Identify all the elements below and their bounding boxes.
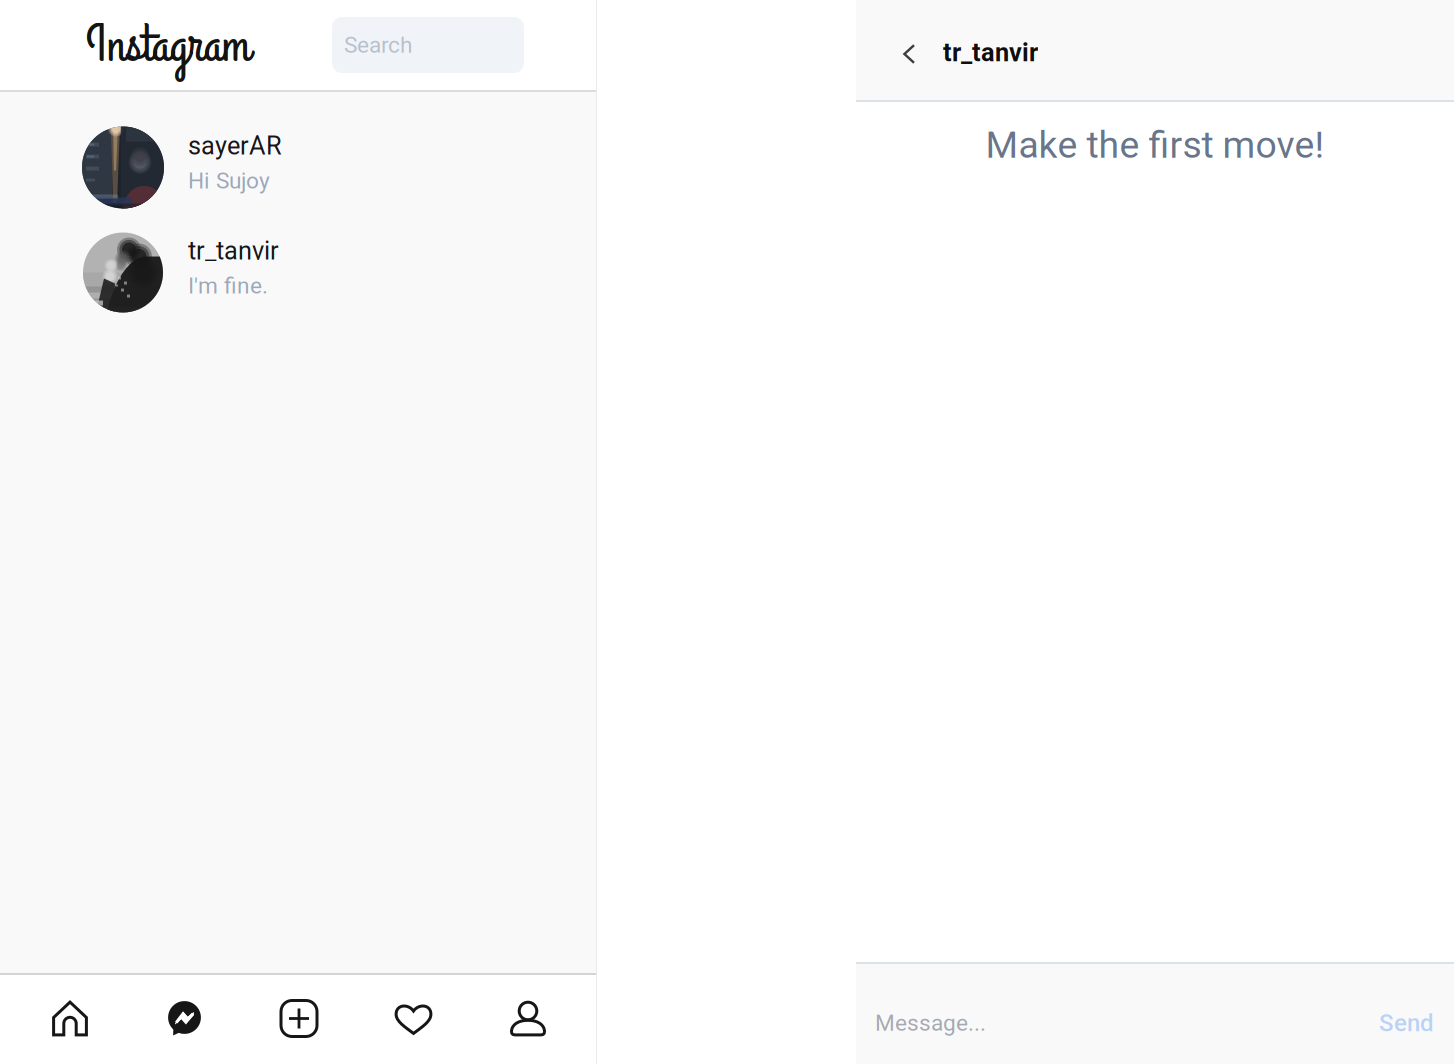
button[interactable]: Back: [856, 24, 931, 76]
button[interactable]: Home: [51, 974, 89, 1064]
button[interactable]: Create: [280, 974, 318, 1064]
button[interactable]: tr_tanvir: [0, 220, 597, 325]
staticText: sayerAR: [188, 131, 282, 161]
button[interactable]: Send: [1379, 963, 1454, 1064]
staticText: Instagram: [86, 11, 250, 81]
staticText: Make the first move!: [985, 123, 1324, 167]
button[interactable]: sayerAR: [0, 115, 597, 220]
staticText: Send: [1379, 1009, 1434, 1037]
staticText: I'm fine.: [188, 273, 268, 299]
button[interactable]: Messages: [165, 974, 203, 1064]
staticText: tr_tanvir: [943, 38, 1038, 67]
staticText: Message...: [875, 1010, 986, 1036]
button[interactable]: Search: [332, 17, 524, 73]
button[interactable]: Activity: [394, 974, 432, 1064]
button[interactable]: Profile: [509, 974, 547, 1064]
staticText: Hi Sujoy: [188, 168, 270, 194]
staticText: tr_tanvir: [188, 236, 279, 266]
staticText: Search: [344, 32, 412, 58]
